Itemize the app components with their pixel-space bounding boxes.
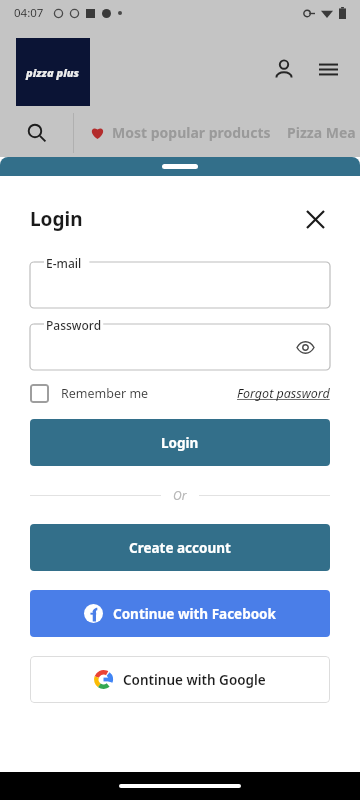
button[interactable]: Forgot password (237, 385, 330, 402)
staticText: Or (173, 487, 187, 503)
button[interactable]: Menu (310, 51, 346, 87)
staticText: Continue with Google (123, 671, 266, 689)
button[interactable]: Show password (290, 332, 320, 362)
staticText: 04:07 (14, 5, 44, 21)
button[interactable]: Continue with Facebook (30, 590, 330, 637)
button[interactable]: Login (30, 419, 330, 466)
staticText: Remember me (61, 385, 149, 402)
button[interactable]: Continue with Google (30, 656, 330, 703)
staticText: Password (46, 317, 102, 333)
staticText: pizza plus (26, 65, 80, 80)
button[interactable]: Pizza Mea (287, 123, 356, 142)
staticText: Login (161, 434, 199, 452)
button[interactable]: Pizza Plus logo (16, 38, 90, 106)
button[interactable]: Account (266, 51, 302, 87)
staticText: Forgot password (237, 385, 330, 402)
staticText: Most popular products (112, 123, 271, 142)
staticText: E-mail (46, 255, 82, 271)
staticText: Login (30, 206, 83, 232)
button[interactable]: Search (0, 108, 73, 157)
button[interactable]: Close (300, 204, 330, 234)
staticText: Create account (129, 539, 231, 557)
staticText: Continue with Facebook (113, 605, 276, 623)
button[interactable]: Create account (30, 524, 330, 571)
button[interactable]: Most popular products (90, 123, 271, 142)
button[interactable]: Remember me (30, 384, 149, 403)
